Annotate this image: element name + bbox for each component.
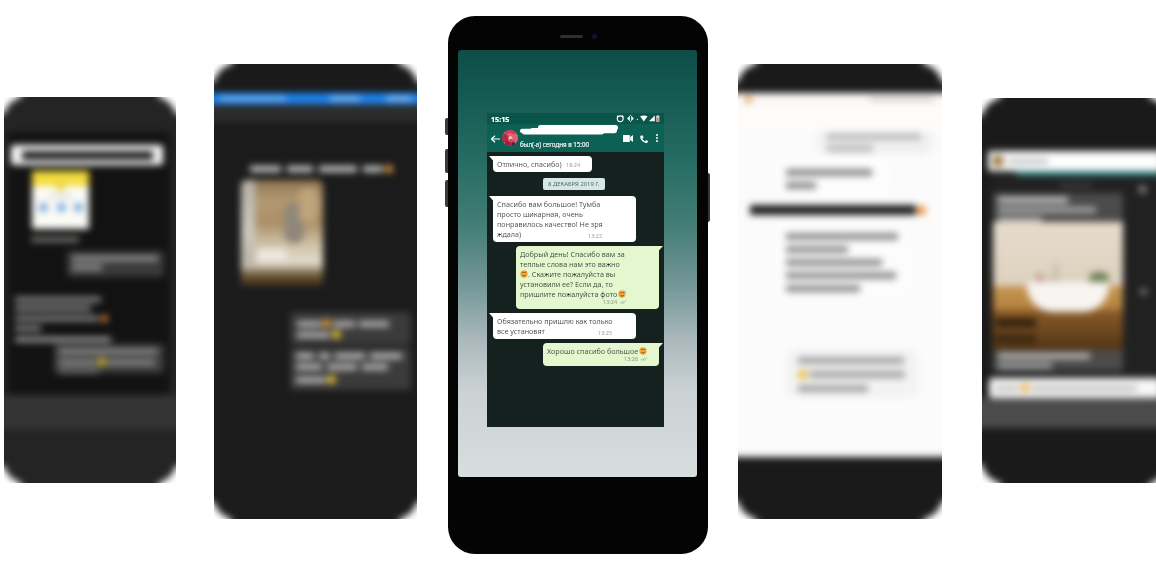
- button[interactable]: Call: [636, 131, 651, 146]
- button[interactable]: Хорошо спасибо большое: [543, 343, 659, 366]
- button[interactable]: Review screenshot 4: [738, 64, 942, 519]
- button[interactable]: Review screenshot 1: [4, 97, 176, 483]
- button[interactable]: Спасибо вам большое! Тумба просто шикарн…: [493, 196, 636, 242]
- staticText: 13:22: [588, 232, 603, 239]
- staticText: Спасибо вам большое! Тумба просто шикарн…: [497, 199, 603, 239]
- staticText: 18:24: [566, 161, 581, 168]
- staticText: . Скажите пожалуйста вы: [528, 269, 616, 279]
- staticText: Хорошо спасибо большое: [547, 346, 639, 356]
- button[interactable]: More options: [651, 132, 663, 144]
- button[interactable]: Back: [487, 124, 664, 152]
- button[interactable]: 8 ДЕКАБРЯ 2019 Г.: [543, 178, 605, 190]
- button[interactable]: Обязательно пришлю как только все устано…: [493, 313, 636, 339]
- button[interactable]: Review screenshot 2: [214, 64, 417, 519]
- staticText: Отлично, спасибо): [497, 159, 562, 169]
- staticText: 13:24: [603, 298, 618, 305]
- staticText: 13:26: [624, 355, 639, 362]
- staticText: был(-а) сегодня в 15:00: [520, 140, 590, 148]
- staticText: Обязательно пришлю как только все устано…: [497, 316, 613, 336]
- staticText: 15:15: [491, 114, 510, 124]
- staticText: пришлите пожалуйста фото: [520, 289, 618, 299]
- button[interactable]: Добрый день! Спасибо вам за теплые слова…: [516, 246, 659, 309]
- button[interactable]: Back: [489, 132, 502, 145]
- button[interactable]: Video call: [620, 130, 636, 146]
- button[interactable]: Отлично, спасибо): [493, 156, 592, 172]
- button[interactable]: Review screenshot 5: [982, 98, 1156, 483]
- staticText: установили ее? Если да, то: [520, 279, 613, 289]
- staticText: 13:25: [598, 329, 613, 336]
- staticText: 8 ДЕКАБРЯ 2019 Г.: [548, 180, 600, 188]
- staticText: Добрый день! Спасибо вам за теплые слова…: [520, 249, 625, 269]
